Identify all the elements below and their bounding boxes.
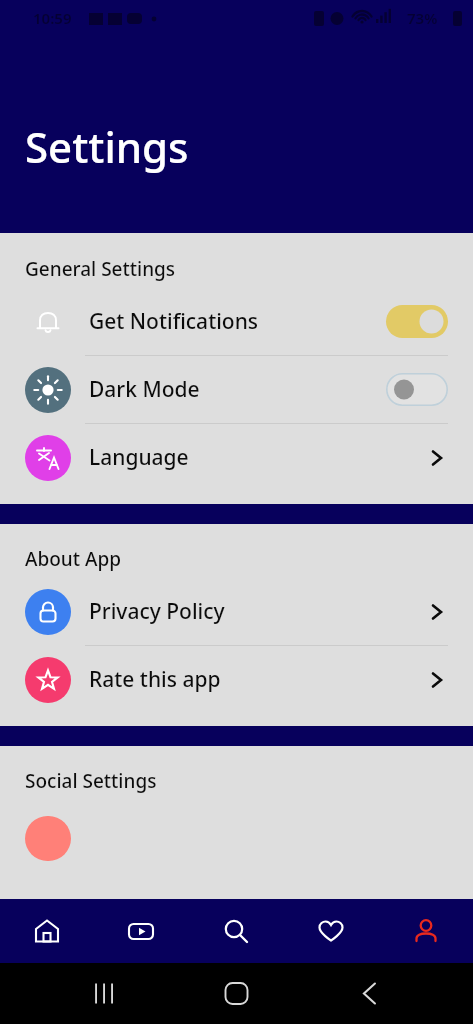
staticText: About App	[25, 546, 121, 572]
other: Open	[426, 601, 448, 623]
button[interactable]: Language	[0, 424, 473, 491]
button[interactable]: Rate this app	[0, 646, 473, 713]
staticText: Social Settings	[25, 768, 157, 794]
staticText: Rate this app	[89, 665, 221, 694]
staticText: General Settings	[25, 256, 176, 282]
button[interactable]: Toggle on	[386, 305, 448, 338]
button[interactable]: Home	[0, 899, 94, 963]
button[interactable]: Dark Mode	[0, 356, 473, 423]
button[interactable]: Videos	[94, 899, 188, 963]
button[interactable]: Privacy Policy	[0, 578, 473, 645]
button[interactable]: Favorites	[283, 899, 378, 963]
staticText: 10:59	[33, 8, 72, 28]
button[interactable]: Profile	[378, 899, 473, 963]
staticText: Language	[89, 443, 189, 472]
other: Open	[426, 447, 448, 469]
staticText: Get Notifications	[89, 307, 259, 336]
staticText: Settings	[25, 118, 189, 175]
button[interactable]: Get Notifications	[0, 288, 473, 355]
other: Open	[426, 669, 448, 691]
staticText: Dark Mode	[89, 375, 200, 404]
staticText: 73%	[407, 8, 438, 28]
button[interactable]: Search	[188, 899, 283, 963]
button[interactable]: Toggle off	[386, 373, 448, 406]
staticText: Privacy Policy	[89, 597, 225, 626]
